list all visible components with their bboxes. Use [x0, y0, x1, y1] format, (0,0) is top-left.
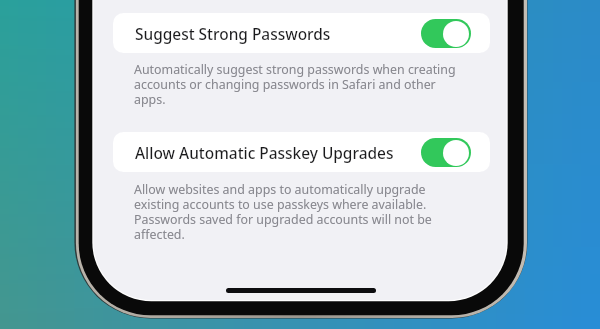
- staticText: Allow websites and apps to automatically…: [134, 181, 464, 242]
- staticText: Allow Automatic Passkey Upgrades: [135, 142, 394, 163]
- button[interactable]: Toggle Suggest Strong Passwords: [421, 19, 471, 48]
- staticText: Automatically suggest strong passwords w…: [134, 61, 464, 107]
- button[interactable]: Toggle Allow Automatic Passkey Upgrades: [421, 138, 471, 167]
- staticText: Suggest Strong Passwords: [135, 23, 331, 44]
- button[interactable]: Allow Automatic Passkey Upgrades: [113, 132, 490, 172]
- button[interactable]: Suggest Strong Passwords: [113, 13, 490, 53]
